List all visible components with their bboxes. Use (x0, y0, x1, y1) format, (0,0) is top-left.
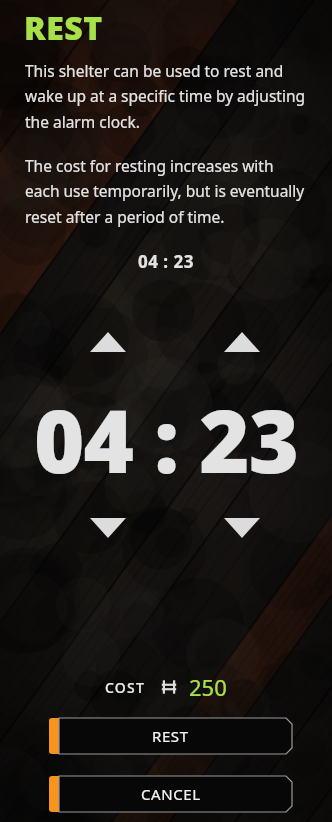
staticText: This shelter can be used to rest and wak… (25, 60, 307, 133)
staticText: REST (24, 6, 103, 50)
staticText: COST (105, 678, 145, 697)
button[interactable]: Increase hours (80, 325, 136, 359)
button[interactable]: REST (49, 718, 292, 754)
button[interactable]: CANCEL (49, 776, 292, 812)
staticText: CANCEL (141, 784, 201, 804)
button[interactable]: Increase minutes (214, 325, 270, 359)
staticText: 04 : 23 (34, 381, 299, 491)
button[interactable]: Decrease minutes (214, 511, 270, 545)
staticText: 250 (189, 672, 227, 702)
staticText: 04 : 23 (0, 250, 332, 273)
staticText: The cost for resting increases with each… (25, 155, 307, 228)
button[interactable]: Decrease hours (80, 511, 136, 545)
staticText: REST (152, 726, 189, 746)
